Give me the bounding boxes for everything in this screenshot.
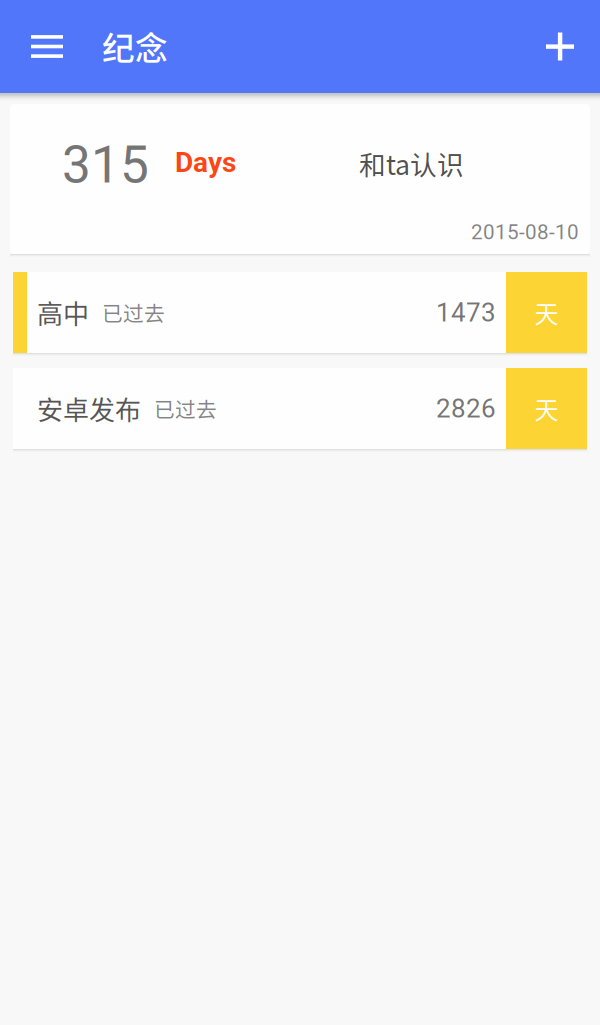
button[interactable]: 安卓发布 — [13, 368, 587, 452]
button[interactable]: Add — [530, 0, 590, 93]
staticText: 已过去 — [154, 393, 217, 423]
button[interactable]: 纪念 — [102, 0, 168, 93]
staticText: 和ta认识 — [359, 144, 464, 183]
staticText: 2826 — [436, 393, 496, 424]
button[interactable]: Menu — [16, 0, 78, 93]
button[interactable]: 高中 — [13, 272, 587, 356]
staticText: 天 — [534, 295, 558, 330]
staticText: 315 — [62, 135, 149, 195]
staticText: 天 — [534, 391, 558, 426]
staticText: 1473 — [436, 297, 496, 328]
staticText: 已过去 — [102, 297, 165, 327]
staticText: 高中 — [37, 294, 89, 331]
staticText: 安卓发布 — [37, 390, 141, 427]
staticText: 纪念 — [102, 23, 168, 70]
staticText: Days — [175, 146, 236, 179]
staticText: 2015-08-10 — [471, 220, 579, 244]
